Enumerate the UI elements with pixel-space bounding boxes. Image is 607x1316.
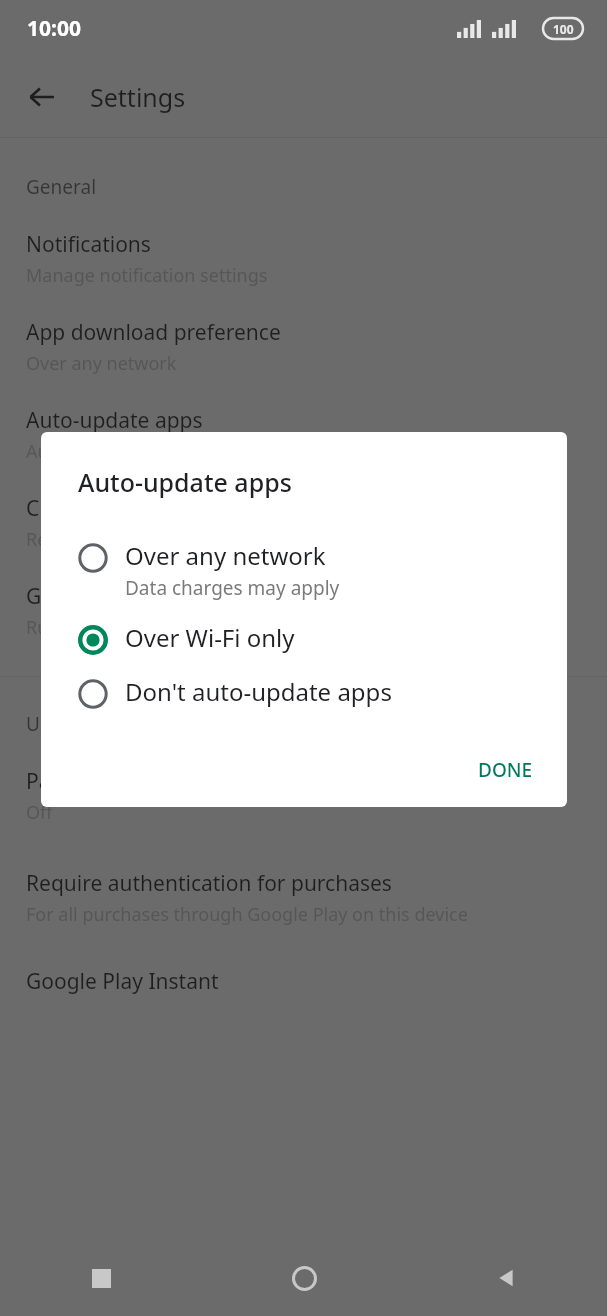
button[interactable]: Don't auto-update apps (41, 665, 567, 719)
button[interactable]: Recent apps (0, 1240, 203, 1316)
button[interactable]: App download preference (0, 318, 607, 376)
button[interactable]: Require authentication for purchases (0, 869, 607, 927)
staticText: User controls (26, 711, 145, 737)
button[interactable]: Back (14, 69, 70, 125)
staticText: For all purchases through Google Play on… (26, 902, 468, 927)
button[interactable]: Over Wi-Fi only (41, 611, 567, 665)
staticText: Settings (90, 80, 186, 114)
staticText: Google Play Instant (26, 967, 219, 996)
staticText: Don't auto-update apps (125, 675, 392, 708)
staticText: DONE (478, 757, 533, 783)
button[interactable]: Back (405, 1240, 607, 1316)
staticText: Require authentication for purchases (26, 869, 392, 898)
staticText: Auto-update apps over Wi-Fi only (26, 439, 306, 464)
staticText: Google Play Protect (26, 582, 220, 611)
button[interactable]: Auto-update apps (0, 406, 607, 464)
staticText: Auto-update apps (26, 406, 203, 435)
button[interactable]: Notifications (0, 230, 607, 288)
staticText: 100 (553, 21, 574, 37)
staticText: Auto-update apps (78, 465, 292, 499)
staticText: Notifications (26, 230, 151, 259)
staticText: Over any network (26, 351, 177, 376)
button[interactable]: Google Play Protect (0, 582, 607, 640)
button[interactable]: Google Play Instant (0, 967, 607, 996)
staticText: General (26, 174, 97, 200)
staticText: Over Wi-Fi only (125, 621, 295, 654)
button[interactable]: Clear local search history (0, 494, 607, 552)
button[interactable]: DONE (462, 747, 549, 793)
staticText: Data charges may apply (125, 575, 340, 601)
staticText: Run a security scan and check for harmfu… (26, 615, 426, 640)
staticText: App download preference (26, 318, 281, 347)
staticText: Manage notification settings (26, 263, 268, 288)
button[interactable]: Parental controls (0, 767, 607, 825)
staticText: Parental controls (26, 767, 194, 796)
staticText: Over any network (125, 539, 326, 572)
staticText: Off (26, 800, 53, 825)
staticText: Remove searches made on this device (26, 527, 347, 552)
button[interactable]: Over any network (41, 529, 567, 611)
staticText: Clear local search history (26, 494, 272, 523)
staticText: 10:00 (27, 14, 81, 43)
button[interactable]: Home (203, 1240, 405, 1316)
